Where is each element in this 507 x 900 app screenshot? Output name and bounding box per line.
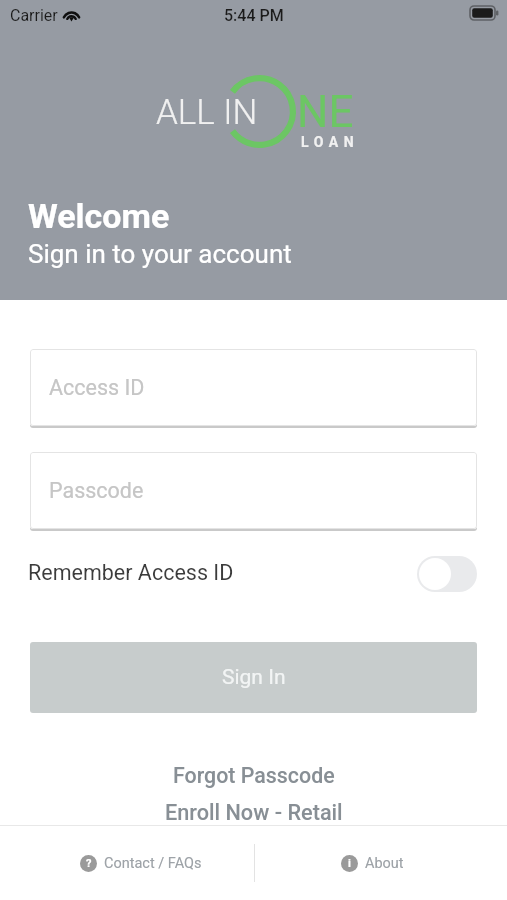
staticText: Carrier <box>10 6 58 25</box>
staticText: Remember Access ID <box>28 560 234 585</box>
button[interactable]: Passcode <box>30 452 477 529</box>
staticText: Access ID <box>49 375 145 400</box>
staticText: Sign In <box>222 665 286 690</box>
button[interactable]: Enroll Now - Retail <box>0 799 507 825</box>
staticText: ? <box>86 857 92 870</box>
button[interactable]: Remember Access ID toggle <box>417 556 477 592</box>
staticText: i <box>348 857 351 870</box>
staticText: About <box>365 855 404 872</box>
button[interactable]: Access ID <box>30 349 477 426</box>
button[interactable]: Sign In <box>30 642 477 713</box>
staticText: Contact / FAQs <box>104 855 202 872</box>
button[interactable]: Forgot Passcode <box>0 762 507 788</box>
staticText: Forgot Passcode <box>173 763 335 788</box>
staticText: NE <box>297 86 354 138</box>
staticText: Sign in to your account <box>28 239 292 269</box>
staticText: 5:44 PM <box>224 6 284 25</box>
staticText: Enroll Now - Retail <box>165 800 343 825</box>
staticText: Welcome <box>28 196 170 236</box>
staticText: ALL IN <box>156 92 258 133</box>
button[interactable]: ? <box>80 855 202 872</box>
staticText: LOAN <box>301 134 360 150</box>
button[interactable]: i <box>341 855 404 872</box>
staticText: Passcode <box>49 478 144 503</box>
